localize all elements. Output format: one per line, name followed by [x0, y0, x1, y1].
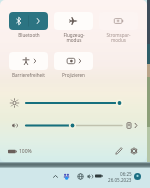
staticText: Flugzeug- modus — [63, 32, 85, 44]
staticText: 100% — [19, 148, 32, 155]
button[interactable]: Akku — [94, 171, 104, 181]
staticText: Stromspar- modus — [106, 32, 131, 44]
button[interactable]: Lautstärke — [0, 119, 147, 133]
button[interactable]: Ausgeblendete Symbole einblenden — [50, 171, 60, 181]
button[interactable]: Bearbeiten — [113, 145, 125, 157]
button[interactable]: 100% — [8, 148, 32, 155]
button[interactable]: Microsoft Teams — [61, 171, 71, 181]
button[interactable] — [54, 52, 93, 70]
staticText: 26.05.2023 — [108, 177, 132, 183]
button[interactable] — [9, 52, 48, 70]
button[interactable] — [54, 12, 93, 30]
button[interactable]: Benachrichtigungen — [133, 172, 142, 181]
staticText: Barrierefreiheit — [12, 72, 45, 78]
button[interactable]: Lautstärke — [84, 171, 94, 181]
button[interactable]: Netzwerk — [75, 171, 85, 181]
button[interactable]: Helligkeit — [0, 96, 147, 110]
button[interactable] — [99, 12, 138, 30]
button[interactable]: Einstellungen — [128, 145, 140, 157]
button[interactable]: 06:25 — [106, 171, 132, 183]
button[interactable] — [9, 12, 48, 30]
staticText: Projizieren — [62, 72, 85, 78]
staticText: Bluetooth — [18, 32, 40, 38]
staticText: 06:25 — [120, 171, 132, 177]
